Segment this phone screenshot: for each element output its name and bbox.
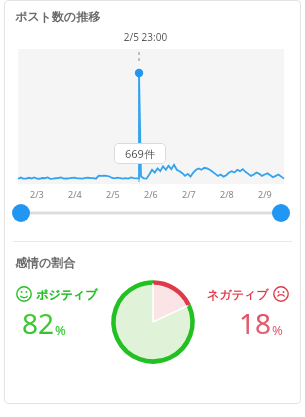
staticText: ネガティブ: [207, 287, 269, 302]
button[interactable]: Sentiment pie chart: [111, 280, 195, 364]
staticText: 82: [22, 304, 55, 342]
other: Negative: [273, 286, 289, 302]
staticText: 2/9: [258, 188, 272, 200]
staticText: 669件: [125, 146, 155, 161]
staticText: 2/5 23:00: [4, 30, 287, 44]
staticText: 2/8: [220, 188, 234, 200]
other: Positive: [16, 286, 32, 302]
staticText: 2/5: [106, 188, 120, 200]
button[interactable]: Date range slider: [4, 201, 301, 235]
staticText: ポジティブ: [36, 287, 98, 302]
staticText: 2/4: [68, 188, 82, 200]
staticText: ポスト数の推移: [15, 9, 101, 24]
button[interactable]: 669件: [4, 49, 301, 201]
staticText: 感情の割合: [15, 255, 76, 270]
button[interactable]: Positive: [16, 286, 98, 342]
staticText: 18: [239, 304, 272, 342]
staticText: 2/6: [144, 188, 158, 200]
staticText: 2/7: [182, 188, 196, 200]
staticText: %: [272, 321, 283, 339]
staticText: 2/3: [30, 188, 44, 200]
staticText: %: [55, 321, 66, 339]
button[interactable]: ネガティブ: [207, 286, 289, 342]
